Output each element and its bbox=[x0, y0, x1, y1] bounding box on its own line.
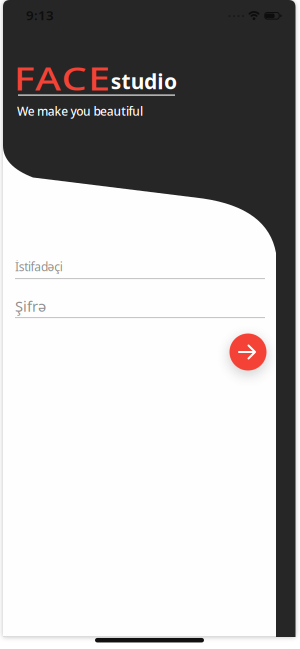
staticText: İstifadəçi bbox=[15, 258, 63, 274]
staticText: Şifrə bbox=[15, 296, 46, 316]
button[interactable]: İstifadəçi bbox=[15, 253, 265, 280]
staticText: We make you beautiful bbox=[17, 103, 143, 119]
staticText: studio bbox=[104, 64, 184, 98]
staticText: 9:13 bbox=[26, 6, 54, 24]
staticText: FACE bbox=[16, 53, 107, 103]
button[interactable]: Log in bbox=[229, 333, 266, 370]
button[interactable]: Şifrə bbox=[15, 292, 265, 319]
